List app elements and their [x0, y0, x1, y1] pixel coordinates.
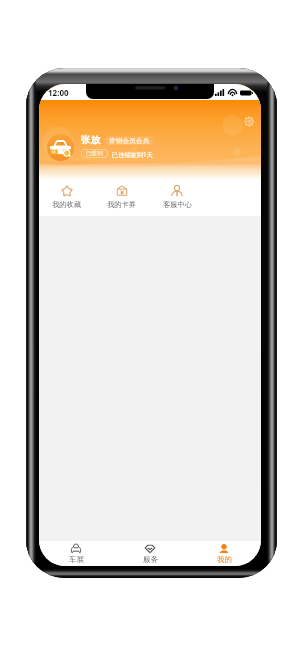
button[interactable]: 客服中心	[149, 180, 205, 216]
staticText: 我的卡券	[107, 200, 136, 209]
button[interactable]: 车展	[39, 541, 113, 566]
button[interactable]: Settings	[242, 115, 255, 128]
button[interactable]: Avatar	[47, 134, 74, 161]
button[interactable]: 我的卡券	[94, 180, 149, 216]
staticText: 客服中心	[163, 200, 192, 209]
staticText: 12:00	[48, 87, 69, 98]
button[interactable]: 服务	[113, 541, 187, 566]
staticText: 服务	[143, 555, 158, 564]
staticText: 我的	[217, 555, 232, 564]
staticText: 青铜会员会员	[109, 137, 150, 145]
staticText: 车展	[69, 555, 84, 564]
staticText: 已签到	[86, 150, 103, 157]
staticText: 张放	[81, 134, 100, 146]
button[interactable]: 我的	[187, 541, 261, 566]
button[interactable]: 我的收藏	[39, 180, 94, 216]
button[interactable]: 已签到	[81, 149, 108, 158]
staticText: 已连续签到1天	[112, 150, 153, 158]
staticText: 我的收藏	[52, 200, 81, 209]
